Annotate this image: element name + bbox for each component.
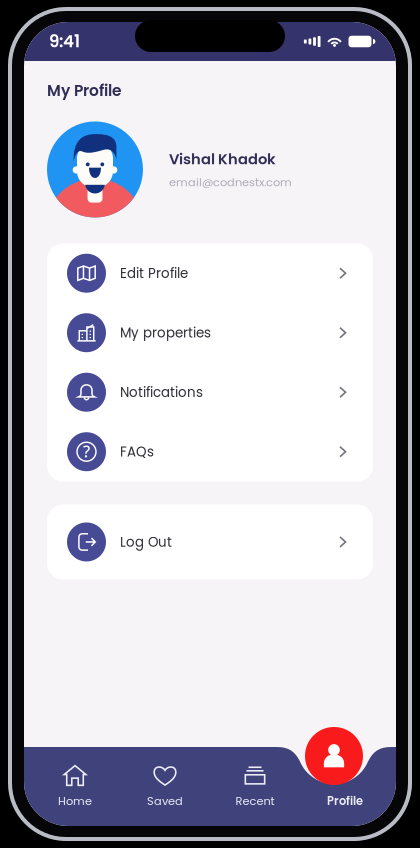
staticText: Notifications bbox=[120, 383, 203, 402]
staticText: Recent bbox=[235, 793, 274, 809]
staticText: 9:41 bbox=[49, 30, 80, 53]
staticText: email@codnestx.com bbox=[169, 174, 292, 190]
staticText: Edit Profile bbox=[120, 264, 188, 283]
staticText: Profile bbox=[327, 793, 363, 809]
staticText: FAQs bbox=[120, 442, 154, 461]
button[interactable]: Profile bbox=[300, 747, 390, 825]
staticText: Vishal Khadok bbox=[169, 149, 276, 169]
button[interactable]: Recent bbox=[210, 747, 300, 825]
button[interactable]: Profile bbox=[305, 727, 363, 785]
staticText: My Profile bbox=[47, 80, 121, 101]
staticText: ? bbox=[83, 441, 90, 462]
staticText: Saved bbox=[147, 793, 183, 809]
staticText: Home bbox=[58, 793, 92, 809]
button[interactable]: My properties bbox=[47, 303, 373, 362]
staticText: Log Out bbox=[120, 533, 172, 551]
button[interactable]: Edit Profile bbox=[47, 243, 373, 303]
staticText: My properties bbox=[120, 323, 211, 342]
button[interactable]: Home bbox=[30, 747, 120, 825]
button[interactable]: Saved bbox=[120, 747, 210, 825]
button[interactable]: ? bbox=[47, 422, 373, 481]
button[interactable]: Notifications bbox=[47, 362, 373, 422]
button[interactable]: Log Out bbox=[47, 504, 373, 579]
